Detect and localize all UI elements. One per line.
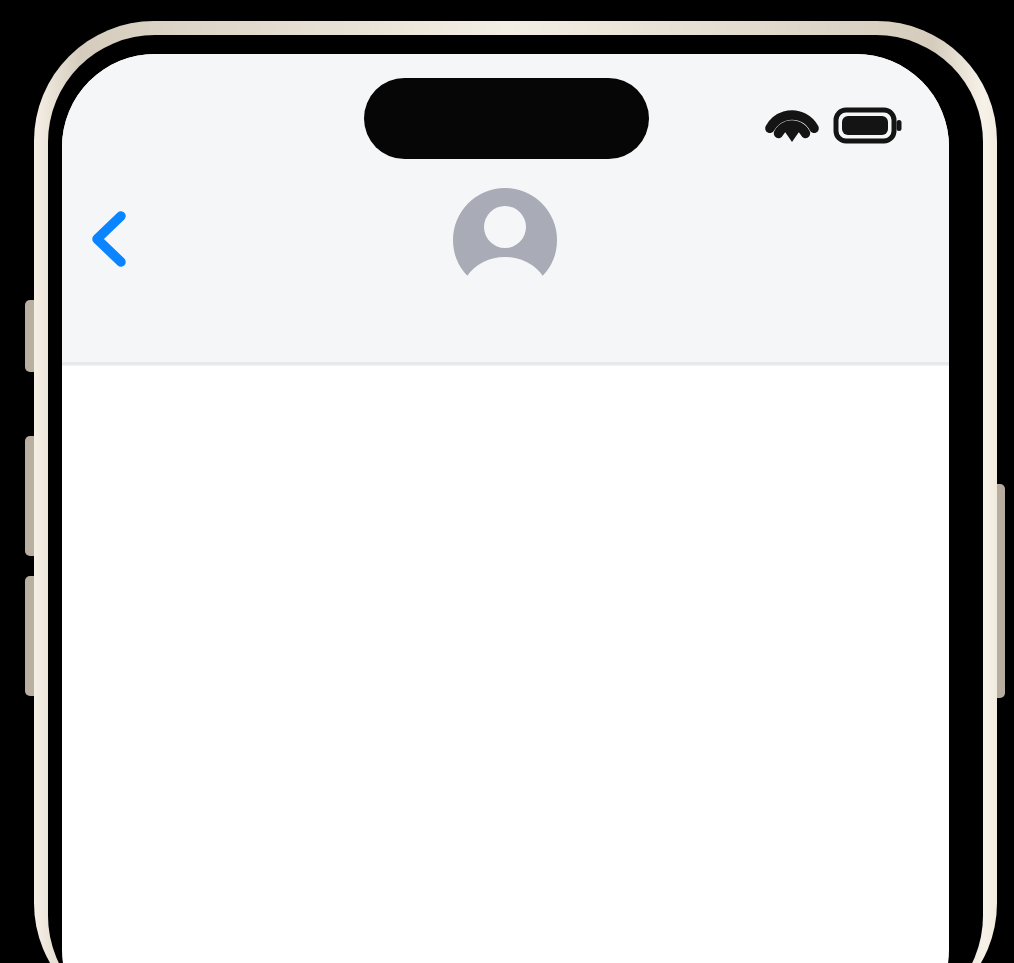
button[interactable]: Profile picture — [451, 186, 559, 294]
button[interactable]: Back — [74, 193, 148, 286]
